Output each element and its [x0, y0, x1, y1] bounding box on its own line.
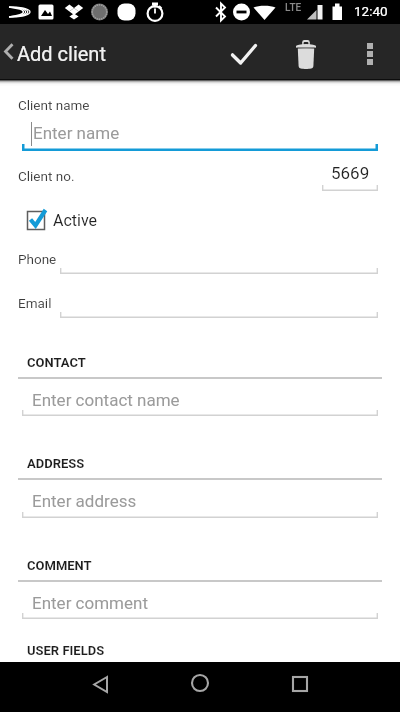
staticText: COMMENT	[27, 558, 92, 573]
staticText: Enter comment	[32, 593, 148, 613]
staticText: Email	[18, 295, 52, 311]
staticText: CONTACT	[27, 355, 86, 370]
button[interactable]: Delete	[286, 36, 326, 72]
button[interactable]: Save	[220, 36, 268, 72]
staticText: Enter contact name	[32, 390, 180, 410]
staticText: Phone	[18, 251, 57, 267]
staticText: USER FIELDS	[27, 643, 105, 658]
staticText: Client no.	[18, 168, 75, 184]
staticText: Add client	[17, 42, 106, 65]
staticText: ADDRESS	[27, 456, 85, 471]
button[interactable]: Home	[170, 658, 230, 708]
staticText: Enter address	[32, 491, 137, 511]
button[interactable]: Active	[22, 206, 52, 236]
button[interactable]: More options	[352, 36, 388, 72]
button[interactable]: Back	[0, 24, 17, 79]
button[interactable]: Recent apps	[270, 659, 330, 709]
button[interactable]: Back	[70, 659, 130, 709]
staticText: Enter name	[33, 123, 120, 143]
staticText: 5669	[331, 163, 370, 183]
staticText: Active	[53, 211, 98, 230]
staticText: LTE	[285, 2, 302, 14]
staticText: Client name	[18, 97, 90, 113]
staticText: 12:40	[354, 3, 388, 19]
